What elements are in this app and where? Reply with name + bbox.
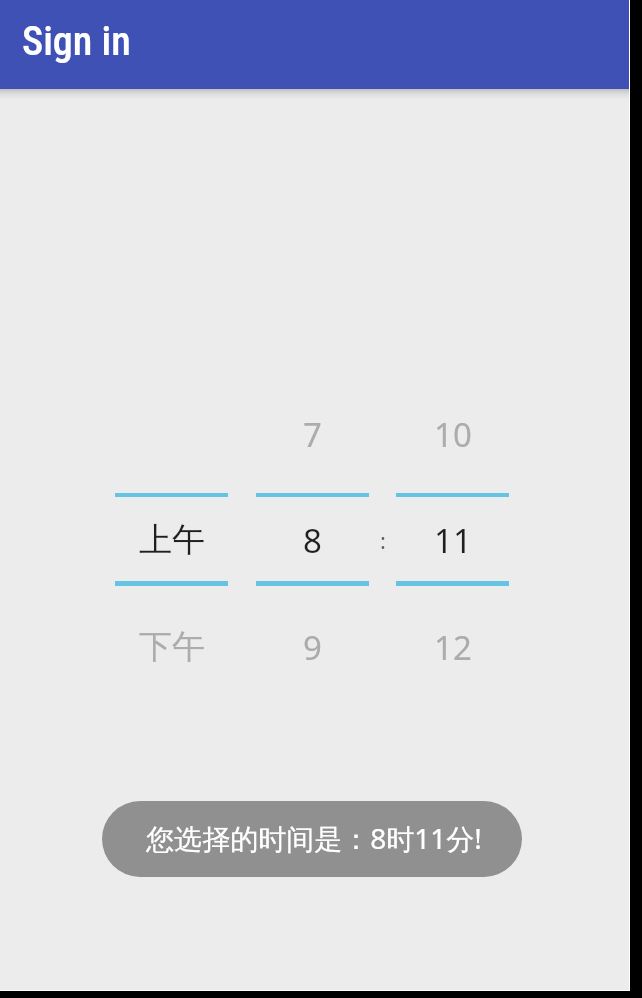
button[interactable]: 7 [256, 407, 369, 461]
button[interactable]: 10 [396, 407, 509, 461]
staticText: 上午 [139, 519, 205, 561]
button[interactable]: 您选择的时间是：8时11分! [102, 801, 522, 877]
staticText: 您选择的时间是：8时11分! [146, 819, 482, 857]
staticText: 7 [303, 412, 322, 457]
staticText: : [380, 525, 386, 555]
staticText: 9 [303, 625, 322, 670]
button[interactable]: 下午 [115, 620, 228, 674]
staticText: 12 [434, 625, 472, 670]
button[interactable]: 8 [256, 513, 369, 567]
button[interactable]: 11 [396, 513, 509, 567]
button[interactable]: 上午 [115, 513, 228, 567]
button[interactable]: Sign in [0, 0, 629, 89]
staticText: Sign in [22, 18, 131, 65]
button[interactable]: 12 [396, 620, 509, 674]
staticText: 8 [303, 518, 322, 563]
button[interactable]: 9 [256, 620, 369, 674]
staticText: 11 [434, 518, 472, 563]
staticText: 下午 [139, 626, 205, 668]
staticText: 10 [434, 412, 472, 457]
